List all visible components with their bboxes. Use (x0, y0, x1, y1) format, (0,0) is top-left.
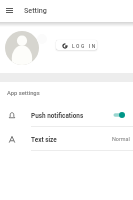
button[interactable]: LOG IN (56, 40, 97, 50)
button[interactable]: Text size (0, 126, 133, 150)
button[interactable]: Profile picture (5, 31, 39, 65)
staticText: Text size (31, 136, 57, 144)
button[interactable]: Push notifications toggle (113, 112, 125, 118)
staticText: Normal (112, 136, 130, 142)
staticText: App settings (7, 90, 40, 97)
staticText: Push notifications (31, 112, 84, 120)
button[interactable]: Push notifications (0, 102, 133, 126)
button[interactable]: Open navigation menu (1, 2, 18, 19)
button[interactable]: Change profile photo (37, 34, 47, 44)
staticText: LOG IN (72, 43, 97, 49)
staticText: Setting (24, 6, 47, 14)
